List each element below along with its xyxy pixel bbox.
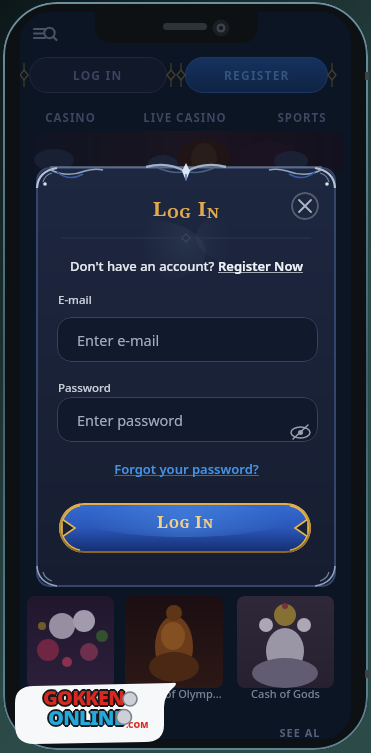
staticText: Password	[58, 380, 111, 396]
staticText: ONLINE	[49, 705, 125, 732]
staticText: ONLINE	[47, 703, 123, 730]
staticText: GOKKEN	[43, 686, 125, 713]
staticText: Cash of Gods	[251, 686, 320, 701]
staticText: ONLINE	[49, 703, 125, 730]
staticText: GOKKEN	[43, 684, 125, 711]
staticText: ONLINE	[48, 702, 124, 729]
staticText: L	[157, 510, 169, 532]
button[interactable]: GOKKEN	[12, 681, 180, 745]
staticText: .COM	[126, 719, 149, 731]
staticText: GOKKEN	[45, 684, 127, 711]
staticText: REGISTER	[224, 67, 290, 83]
button[interactable]: REGISTER	[185, 57, 328, 93]
staticText: LIVE CASINO	[143, 110, 227, 126]
staticText: OG	[169, 515, 191, 532]
button[interactable]	[237, 596, 334, 688]
staticText: I	[195, 510, 203, 532]
staticText: ONLINE	[47, 705, 123, 732]
staticText: N	[203, 515, 214, 532]
staticText: I	[198, 195, 207, 222]
staticText: CASINO	[45, 110, 96, 126]
staticText: LOG IN	[73, 67, 123, 83]
staticText: GOKKEN	[42, 683, 124, 710]
button[interactable]: SPORTS	[252, 110, 351, 126]
button[interactable]	[32, 25, 60, 45]
staticText: E-mail	[58, 292, 92, 308]
button[interactable]	[27, 596, 114, 688]
button[interactable]: Enter password	[57, 397, 318, 442]
button[interactable]: CASINO	[20, 110, 120, 126]
staticText: Enter e-mail	[77, 330, 160, 350]
staticText: rge of Olymp...	[144, 686, 222, 701]
staticText: OG	[167, 202, 192, 222]
button[interactable]: LIVE CASINO	[116, 110, 254, 126]
staticText: GOKKEN	[42, 685, 124, 712]
staticText: Forgot your password?	[114, 460, 259, 478]
staticText: GOKKEN	[44, 685, 126, 712]
button[interactable]: LOG IN	[29, 57, 167, 93]
staticText: ONLINE	[48, 704, 124, 731]
staticText: Don't have an account?	[70, 257, 218, 275]
staticText: L	[153, 195, 167, 222]
staticText: GOKKEN	[41, 684, 123, 711]
staticText: Enter password	[77, 410, 183, 430]
button[interactable]	[125, 596, 223, 688]
button[interactable]: Enter e-mail	[57, 317, 318, 362]
button[interactable]: Forgot your password?	[36, 460, 336, 478]
button[interactable]: L	[59, 503, 311, 553]
staticText: ONLINE	[50, 704, 126, 731]
staticText: GOKKEN	[43, 682, 125, 709]
button[interactable]: SEE AL	[265, 725, 335, 739]
button[interactable]	[291, 192, 319, 220]
staticText: GOKKEN	[44, 683, 126, 710]
staticText: N	[207, 202, 220, 222]
staticText: SEE AL	[279, 725, 321, 739]
staticText: SPORTS	[277, 110, 327, 126]
button[interactable]: Register Now	[218, 257, 303, 275]
staticText: ONLINE	[48, 706, 124, 733]
staticText: ONLINE	[46, 704, 122, 731]
